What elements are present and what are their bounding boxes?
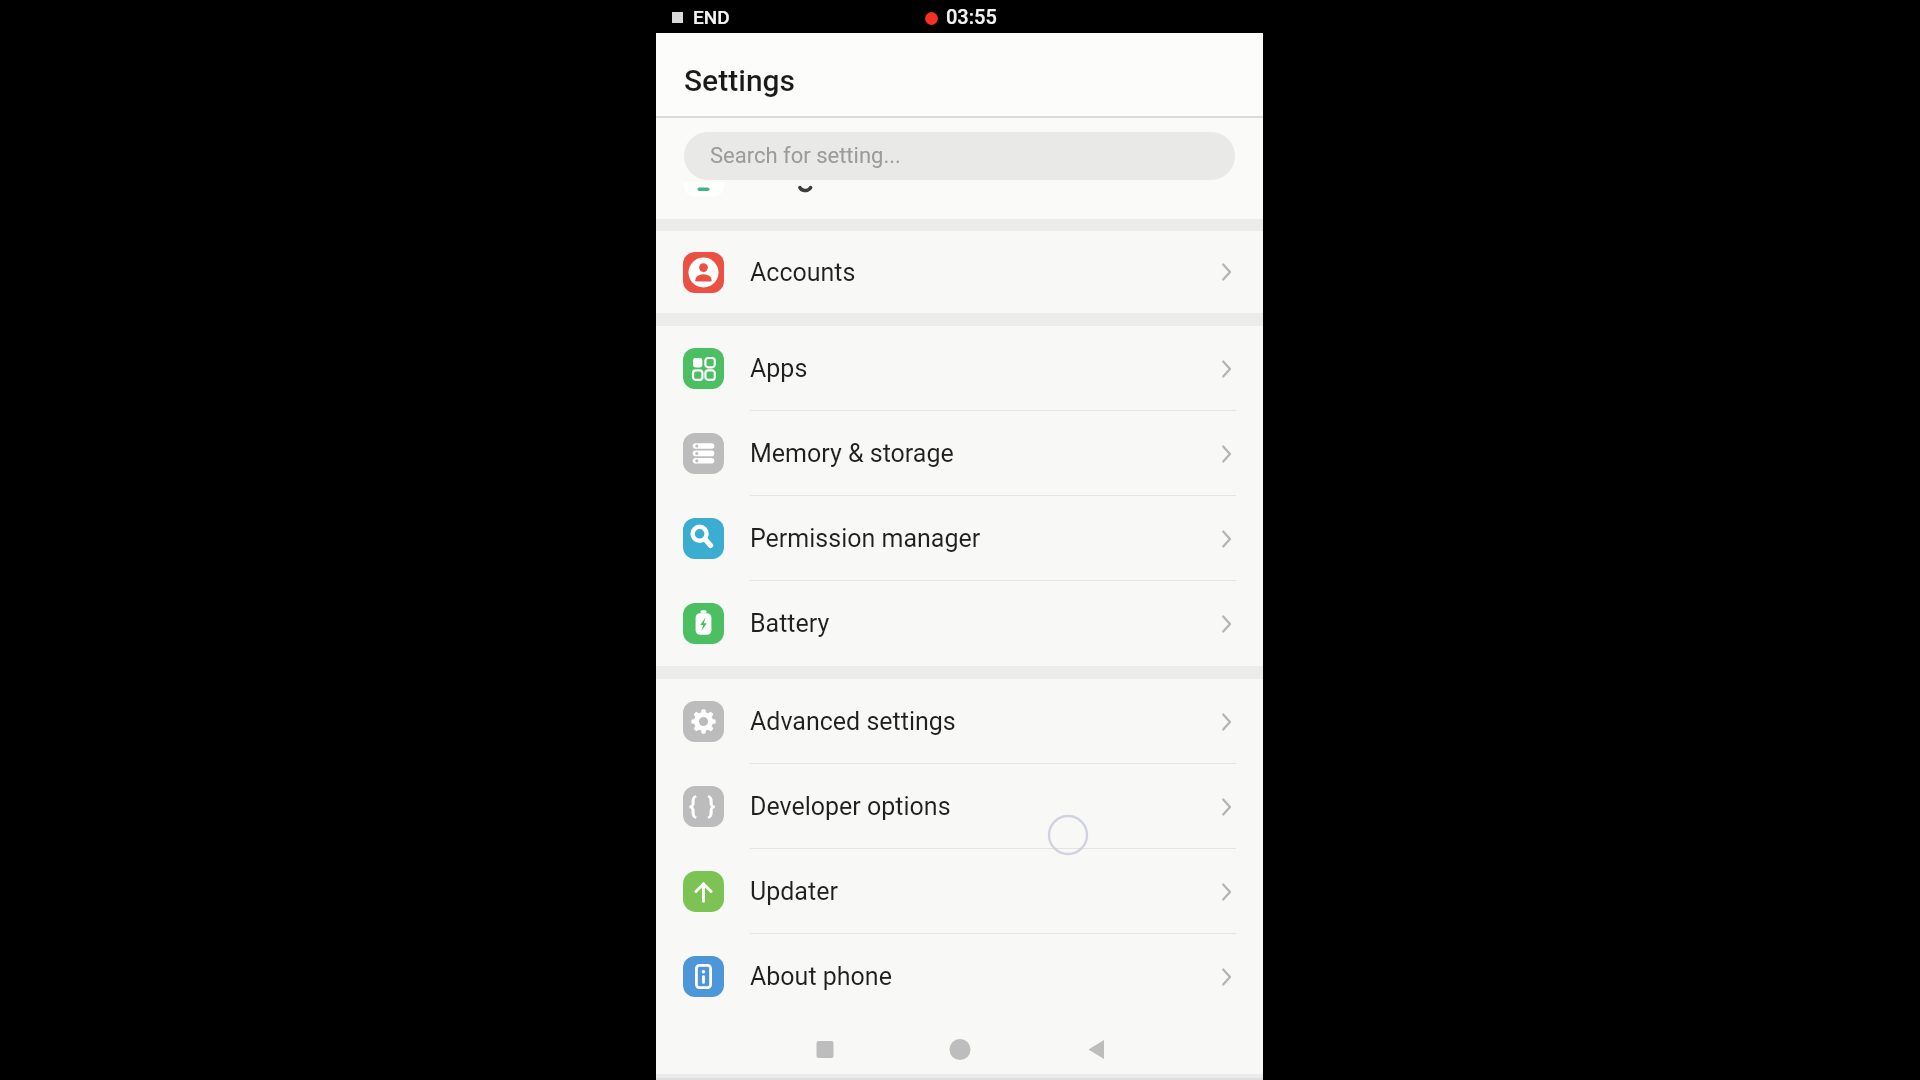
button[interactable]: Permission manager [656, 496, 1263, 581]
staticText: { } [689, 793, 718, 820]
button[interactable]: Accounts [656, 231, 1263, 313]
staticText: Apps [750, 354, 808, 383]
button[interactable]: Battery [656, 581, 1263, 666]
staticText: About phone [750, 962, 892, 991]
staticText: Permission manager [750, 524, 981, 553]
staticText: Search for setting... [710, 143, 901, 169]
button[interactable]: Apps [656, 326, 1263, 411]
button[interactable] [1061, 1019, 1263, 1080]
button[interactable]: { } [656, 764, 1263, 849]
staticText: Battery [750, 609, 830, 638]
staticText: Memory & storage [750, 439, 954, 468]
staticText: 03:55 [946, 5, 997, 28]
button[interactable] [859, 1019, 1061, 1080]
staticText: Updater [750, 877, 838, 906]
button[interactable]: Search for setting... [684, 132, 1235, 180]
button[interactable]: About phone [656, 934, 1263, 1019]
staticText: END [693, 6, 730, 28]
button[interactable]: Updater [656, 849, 1263, 934]
staticText: Settings [684, 63, 796, 98]
staticText: Accounts [750, 258, 856, 287]
staticText: Developer options [750, 792, 951, 821]
button[interactable]: Memory & storage [656, 411, 1263, 496]
button[interactable] [656, 1019, 859, 1080]
staticText: Advanced settings [750, 707, 956, 736]
button[interactable]: Advanced settings [656, 679, 1263, 764]
